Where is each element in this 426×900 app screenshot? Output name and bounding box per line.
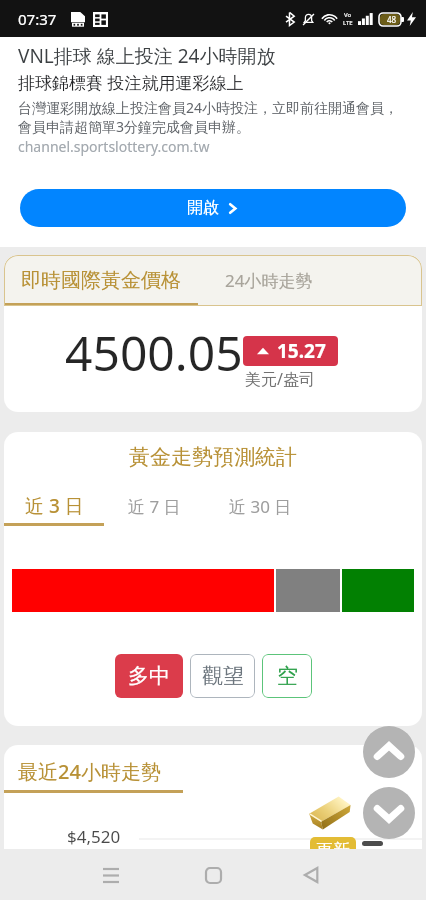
staticText: 更新 [316, 840, 350, 849]
staticText: 空 [277, 663, 298, 689]
staticText: 近 7 日 [128, 495, 181, 518]
button[interactable]: 近 3 日 [4, 486, 104, 526]
staticText: 排球錦標賽 投注就用運彩線上 [18, 71, 244, 94]
staticText: 近 3 日 [25, 493, 84, 519]
staticText: 台灣運彩開放線上投注會員24小時投注，立即前往開通會員，會員申請超簡單3分鐘完成… [18, 98, 408, 136]
button[interactable]: 觀望 [190, 654, 255, 698]
staticText: 24小時走勢 [225, 269, 313, 292]
staticText: VNL排球 線上投注 24小時開放 [18, 43, 276, 69]
staticText: 美元/盎司 [245, 368, 315, 390]
button[interactable]: Scroll up [363, 726, 415, 778]
staticText: 多中 [128, 663, 170, 689]
button[interactable]: 24小時走勢 [198, 255, 340, 306]
staticText: 07:37 [18, 9, 57, 29]
staticText: 近 30 日 [229, 495, 292, 518]
staticText: 即時國際黃金價格 [21, 268, 181, 293]
button[interactable]: 近 30 日 [205, 486, 315, 526]
staticText: Vo [344, 11, 352, 19]
button[interactable]: Scroll down [363, 787, 415, 839]
staticText: channel.sportslottery.com.tw [18, 137, 210, 156]
button[interactable]: Back [289, 853, 333, 897]
button[interactable]: 開啟 [20, 189, 406, 227]
button[interactable]: 空 [262, 654, 312, 698]
staticText: 黃金走勢預測統計 [4, 444, 422, 470]
button[interactable]: 多中 [115, 654, 183, 698]
button[interactable]: Home [191, 853, 235, 897]
staticText: 48 [387, 14, 397, 25]
button[interactable]: 更新 [310, 837, 356, 849]
staticText: LTE [343, 19, 353, 27]
staticText: 4500.05 [65, 320, 243, 385]
button[interactable]: 即時國際黃金價格 [4, 255, 198, 306]
staticText: 15.27 [277, 338, 326, 364]
staticText: 最近24小時走勢 [18, 758, 161, 785]
staticText: $4,520 [67, 825, 121, 848]
button[interactable]: 近 7 日 [104, 486, 205, 526]
staticText: 觀望 [202, 663, 244, 689]
staticText: 開啟 [187, 198, 219, 218]
button[interactable]: Recents [89, 853, 133, 897]
